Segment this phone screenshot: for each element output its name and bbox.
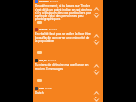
button[interactable]: Reply — [37, 79, 42, 82]
staticText: 8 — [95, 38, 97, 41]
staticText: il y a 1 h — [48, 59, 56, 62]
button[interactable]: Marc45 — [33, 28, 103, 42]
staticText: il y a 3 h — [50, 0, 58, 3]
button[interactable]: Reply — [37, 21, 42, 24]
button[interactable]: Downvote — [93, 14, 100, 18]
staticText: Sylvain3 — [39, 0, 49, 3]
button[interactable]: Downvote — [93, 71, 100, 75]
button[interactable]: Paul — [33, 87, 103, 98]
staticText: 2 — [95, 95, 97, 98]
button[interactable]: Leo_91 — [33, 59, 103, 70]
staticText: 50 min — [45, 87, 52, 90]
staticText: Dutch — [35, 91, 44, 95]
staticText: Paul — [39, 87, 44, 90]
button[interactable]: Upvote — [93, 64, 100, 68]
button[interactable]: Sylvain3 — [33, 0, 103, 20]
button[interactable]: Upvote — [93, 7, 100, 11]
staticText: Leo_91 — [39, 59, 47, 62]
staticText: Marc45 — [39, 28, 48, 31]
staticText: Tu viens de détruire ma confiance en moi… — [35, 63, 92, 70]
staticText: En réalité faut pas se voiler la face êt… — [35, 32, 92, 42]
staticText: 12 — [95, 11, 98, 14]
button[interactable]: Reply — [37, 51, 42, 54]
button[interactable]: Downvote — [93, 98, 100, 102]
button[interactable]: Upvote — [93, 34, 100, 38]
staticText: il y a 2 h — [49, 28, 57, 31]
button[interactable]: Downvote — [93, 41, 100, 45]
staticText: Deuxièmement, si tu bases sur Tinder c'e… — [35, 4, 92, 20]
button[interactable]: Upvote — [93, 91, 100, 95]
staticText: 5 — [95, 68, 97, 71]
